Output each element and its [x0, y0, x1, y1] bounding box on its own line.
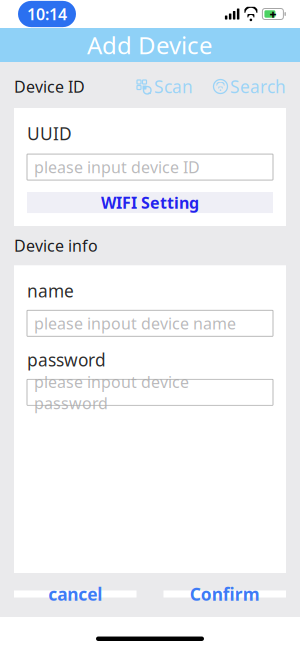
staticText: Confirm — [190, 582, 260, 605]
button[interactable]: WIFI Setting — [27, 192, 273, 213]
staticText: 10:14 — [27, 3, 67, 25]
staticText: Search — [230, 75, 286, 98]
staticText: password — [27, 348, 106, 371]
staticText: Scan — [154, 75, 193, 98]
staticText: please input device ID — [34, 156, 200, 178]
staticText: Device ID — [14, 76, 85, 97]
staticText: please inpout device password — [34, 371, 189, 414]
staticText: + — [269, 6, 276, 22]
button[interactable]: Confirm — [163, 582, 286, 606]
staticText: please inpout device name — [34, 313, 236, 334]
staticText: Add Device — [87, 29, 213, 61]
button[interactable]: cancel — [14, 582, 136, 606]
button[interactable]: Search — [213, 75, 286, 98]
button[interactable]: Scan — [136, 75, 193, 98]
staticText: UUID — [27, 122, 72, 145]
staticText: WIFI Setting — [101, 192, 199, 213]
staticText: cancel — [48, 582, 102, 605]
staticText: name — [27, 279, 74, 302]
staticText: Device info — [14, 235, 98, 256]
